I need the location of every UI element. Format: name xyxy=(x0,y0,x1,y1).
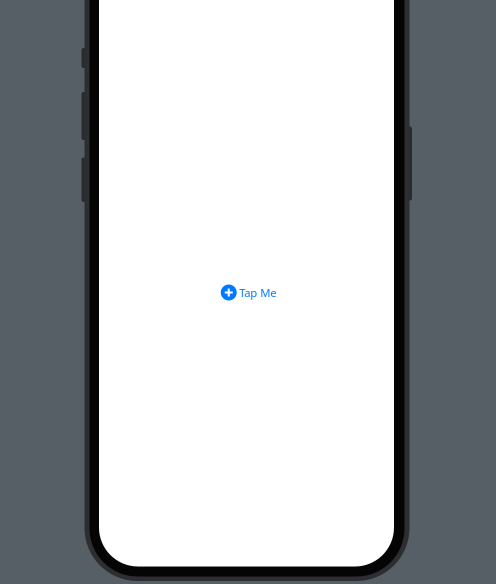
button[interactable]: Tap Me xyxy=(221,284,276,300)
staticText: Tap Me xyxy=(239,285,276,300)
